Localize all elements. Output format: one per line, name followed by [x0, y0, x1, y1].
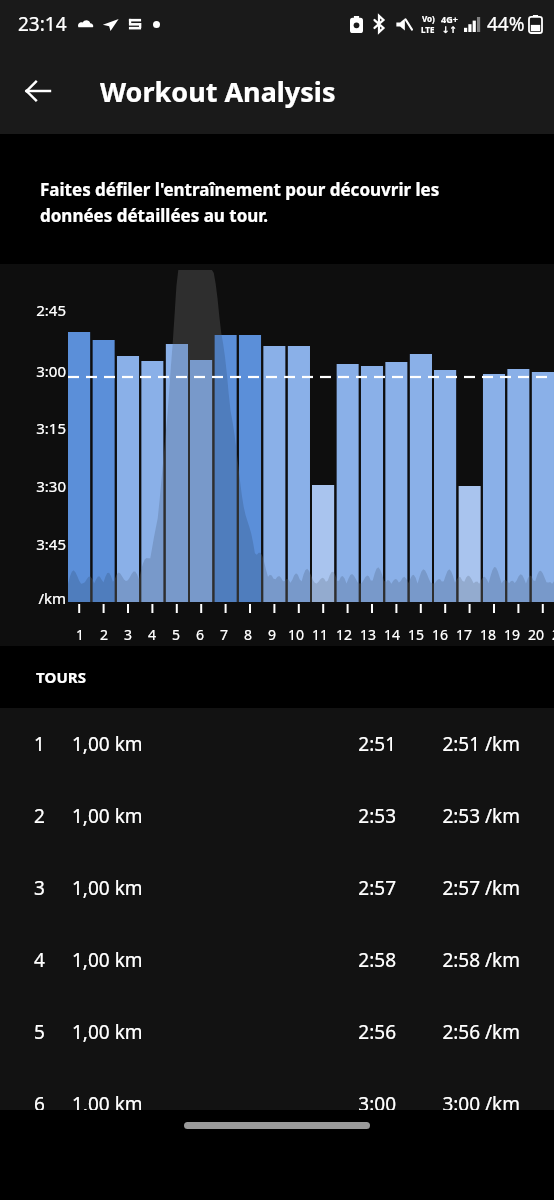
staticText: 5	[172, 625, 181, 644]
staticText: 3:15	[14, 418, 66, 438]
staticText: 10	[288, 625, 305, 644]
staticText: 1,00 km	[72, 731, 143, 757]
staticText: 8	[244, 625, 253, 644]
staticText: 2:57 /km	[414, 875, 520, 901]
staticText: 16	[432, 625, 449, 644]
staticText: 14	[384, 625, 401, 644]
staticText: 3:00	[14, 361, 66, 381]
button[interactable]: 5	[0, 996, 554, 1068]
staticText: 1,00 km	[72, 875, 143, 901]
staticText: 3:00	[304, 1091, 396, 1117]
button[interactable]: 4	[0, 924, 554, 996]
staticText: 4G+	[441, 13, 458, 25]
staticText: 2:51	[304, 731, 396, 757]
staticText: Workout Analysis	[100, 73, 336, 110]
staticText: 2:51 /km	[414, 731, 520, 757]
staticText: 2:57	[304, 875, 396, 901]
staticText: Faites défiler l'entraînement pour décou…	[40, 178, 514, 227]
staticText: 3:30	[14, 476, 66, 496]
staticText: 1,00 km	[72, 1019, 143, 1045]
staticText: 13	[360, 625, 377, 644]
staticText: 19	[504, 625, 521, 644]
staticText: 1,00 km	[72, 1091, 143, 1117]
staticText: 3:45	[14, 534, 66, 554]
button[interactable]: 6	[0, 1068, 554, 1140]
staticText: 1	[34, 731, 45, 757]
staticText: 3	[34, 875, 45, 901]
staticText: 3:00 /km	[414, 1091, 520, 1117]
staticText: 2:58 /km	[414, 947, 520, 973]
button[interactable]: 3	[0, 852, 554, 924]
staticText: 4	[34, 947, 45, 973]
staticText: 5	[34, 1019, 45, 1045]
staticText: 2:56 /km	[414, 1019, 520, 1045]
staticText: 17	[456, 625, 473, 644]
staticText: 3	[124, 625, 133, 644]
staticText: 2	[100, 625, 109, 644]
staticText: 6	[34, 1091, 45, 1117]
staticText: 23:14	[18, 11, 67, 37]
staticText: 2:53 /km	[414, 803, 520, 829]
staticText: 7	[220, 625, 229, 644]
staticText: 1,00 km	[72, 803, 143, 829]
staticText: 21	[552, 625, 554, 644]
staticText: 15	[408, 625, 425, 644]
staticText: 2	[34, 803, 45, 829]
staticText: 12	[336, 625, 353, 644]
staticText: 2:56	[304, 1019, 396, 1045]
staticText: 2:45	[14, 300, 66, 320]
staticText: 1,00 km	[72, 947, 143, 973]
staticText: Vo)	[422, 13, 435, 24]
staticText: 11	[312, 625, 329, 644]
staticText: 2:58	[304, 947, 396, 973]
staticText: 6	[196, 625, 205, 644]
button[interactable]: 2	[0, 780, 554, 852]
staticText: TOURS	[36, 667, 87, 687]
button[interactable]: 1	[0, 708, 554, 780]
staticText: 20	[528, 625, 545, 644]
staticText: ↓↑	[442, 25, 458, 35]
staticText: 9	[268, 625, 277, 644]
staticText: /km	[14, 588, 66, 608]
staticText: 2:53	[304, 803, 396, 829]
staticText: 44%	[487, 11, 525, 37]
staticText: 18	[480, 625, 497, 644]
staticText: 1	[76, 625, 85, 644]
button[interactable]: Back	[10, 63, 66, 119]
staticText: 4	[148, 625, 157, 644]
staticText: LTE	[421, 24, 435, 35]
